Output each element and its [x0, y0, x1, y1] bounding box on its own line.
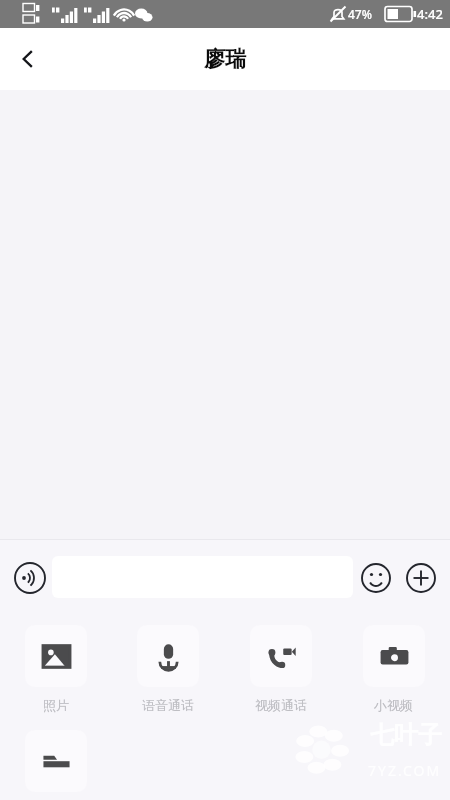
staticText: 视频通话 — [255, 697, 307, 713]
staticText: 47% — [348, 6, 372, 22]
staticText: 小视频 — [374, 697, 413, 713]
staticText: 4:42 — [417, 5, 443, 23]
staticText: 七叶子 — [370, 720, 442, 750]
button[interactable]: 照片 — [0, 625, 112, 713]
button[interactable]: 语音通话 — [112, 625, 224, 713]
button[interactable]: 小视频 — [337, 625, 450, 713]
staticText: 廖瑞 — [204, 46, 246, 72]
button[interactable]: Voice input — [7, 555, 52, 600]
button[interactable]: Emoji — [353, 555, 398, 600]
button[interactable]: More options — [398, 555, 443, 600]
button[interactable]: Back — [4, 35, 52, 83]
button[interactable]: 视频通话 — [224, 625, 337, 713]
staticText: 语音通话 — [142, 697, 194, 713]
button[interactable]: File — [0, 730, 112, 792]
staticText: 照片 — [43, 697, 69, 713]
